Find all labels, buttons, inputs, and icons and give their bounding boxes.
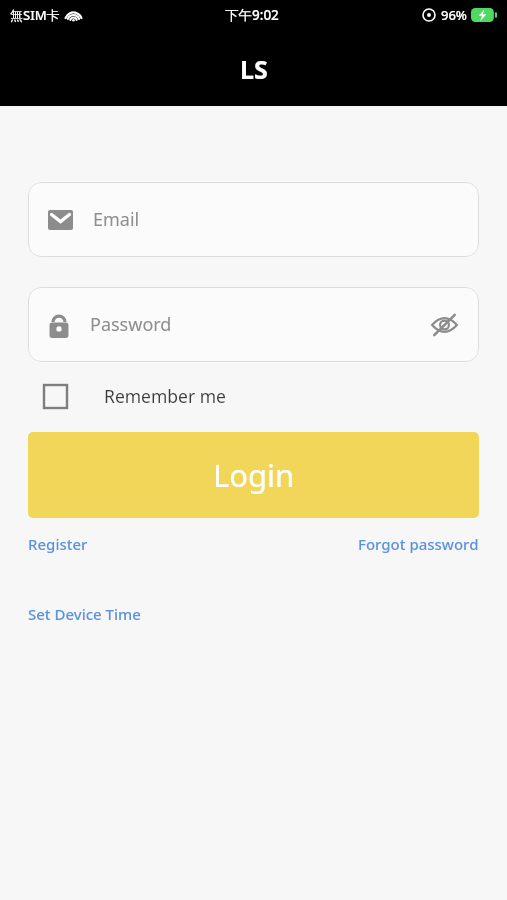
staticText: 無SIM卡 (10, 6, 60, 24)
staticText: Password (90, 312, 172, 337)
staticText: LS (240, 52, 268, 86)
button[interactable]: Login (28, 432, 479, 518)
staticText: Register (28, 534, 88, 554)
button[interactable]: Remember me (28, 384, 226, 408)
button[interactable]: Register (28, 534, 88, 554)
button[interactable]: Forgot password (358, 534, 479, 554)
button[interactable]: Email (28, 182, 479, 257)
button[interactable]: Set Device Time (28, 604, 141, 624)
staticText: Forgot password (358, 534, 479, 554)
staticText: Remember me (104, 384, 226, 408)
button[interactable]: Password (28, 287, 479, 362)
staticText: 下午9:02 (225, 6, 279, 24)
button[interactable]: Show password (427, 308, 461, 342)
staticText: Set Device Time (28, 604, 141, 624)
staticText: Email (93, 207, 140, 232)
staticText: 96% (441, 6, 467, 24)
staticText: Login (213, 454, 295, 496)
